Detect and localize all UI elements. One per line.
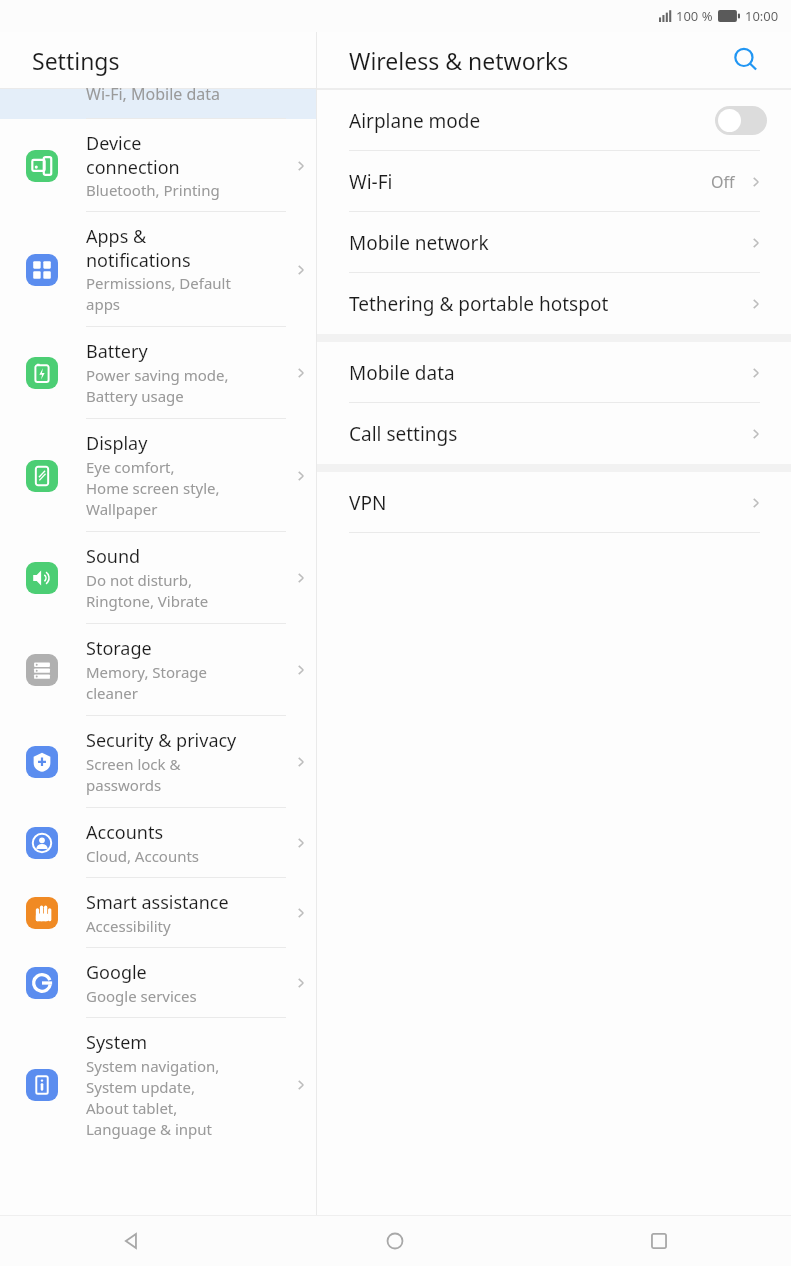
- staticText: Wireless & networks: [349, 45, 569, 76]
- staticText: System: [86, 1030, 148, 1055]
- button[interactable]: Display: [0, 419, 316, 532]
- staticText: Accounts: [86, 820, 164, 845]
- staticText: Do not disturb, Ringtone, Vibrate: [86, 570, 209, 612]
- staticText: Permissions, Default apps: [86, 273, 231, 315]
- button[interactable]: Google: [0, 948, 316, 1018]
- staticText: Tethering & portable hotspot: [349, 291, 745, 317]
- button[interactable]: System: [0, 1018, 316, 1152]
- staticText: Battery: [86, 339, 148, 364]
- button[interactable]: Home: [263, 1216, 527, 1266]
- staticText: Google: [86, 960, 147, 985]
- staticText: Eye comfort, Home screen style, Wallpape…: [86, 457, 220, 520]
- button[interactable]: Wi-Fi, Mobile data: [0, 89, 316, 119]
- staticText: VPN: [349, 490, 745, 516]
- staticText: Storage: [86, 636, 152, 661]
- staticText: Accessibility: [86, 916, 171, 936]
- staticText: 10:00: [745, 7, 779, 25]
- button[interactable]: Back: [0, 1216, 263, 1266]
- staticText: Smart assistance: [86, 890, 229, 915]
- staticText: Power saving mode, Battery usage: [86, 365, 229, 407]
- staticText: Mobile data: [349, 360, 745, 386]
- staticText: Google services: [86, 986, 197, 1006]
- button[interactable]: Accounts: [0, 808, 316, 878]
- staticText: Cloud, Accounts: [86, 846, 200, 866]
- staticText: 100 %: [676, 7, 713, 25]
- staticText: Apps & notifications: [86, 224, 191, 272]
- staticText: Display: [86, 431, 148, 456]
- staticText: System navigation, System update, About …: [86, 1056, 220, 1140]
- button[interactable]: Search: [725, 39, 767, 81]
- button[interactable]: Mobile network: [317, 212, 791, 273]
- staticText: Memory, Storage cleaner: [86, 662, 208, 704]
- staticText: Mobile network: [349, 230, 745, 256]
- button[interactable]: Airplane mode: [317, 90, 791, 151]
- button[interactable]: VPN: [317, 472, 791, 533]
- button[interactable]: Security & privacy: [0, 716, 316, 808]
- staticText: Airplane mode: [349, 108, 715, 134]
- button[interactable]: Recents: [527, 1216, 791, 1266]
- button[interactable]: Call settings: [317, 403, 791, 464]
- staticText: Off: [711, 171, 735, 193]
- button[interactable]: Mobile data: [317, 342, 791, 403]
- button[interactable]: Smart assistance: [0, 878, 316, 948]
- staticText: Device connection: [86, 131, 180, 179]
- button[interactable]: Tethering & portable hotspot: [317, 273, 791, 334]
- staticText: Security & privacy: [86, 728, 237, 753]
- button[interactable]: Wi-Fi: [317, 151, 791, 212]
- staticText: Bluetooth, Printing: [86, 180, 220, 200]
- staticText: Screen lock & passwords: [86, 754, 181, 796]
- staticText: Sound: [86, 544, 141, 569]
- button[interactable]: Apps & notifications: [0, 212, 316, 327]
- button[interactable]: Battery: [0, 327, 316, 419]
- staticText: Wi-Fi, Mobile data: [86, 83, 221, 105]
- staticText: Call settings: [349, 421, 745, 447]
- button[interactable]: Sound: [0, 532, 316, 624]
- button[interactable]: Device connection: [0, 119, 316, 212]
- staticText: Settings: [32, 45, 120, 76]
- button[interactable]: Storage: [0, 624, 316, 716]
- staticText: Wi-Fi: [349, 169, 711, 195]
